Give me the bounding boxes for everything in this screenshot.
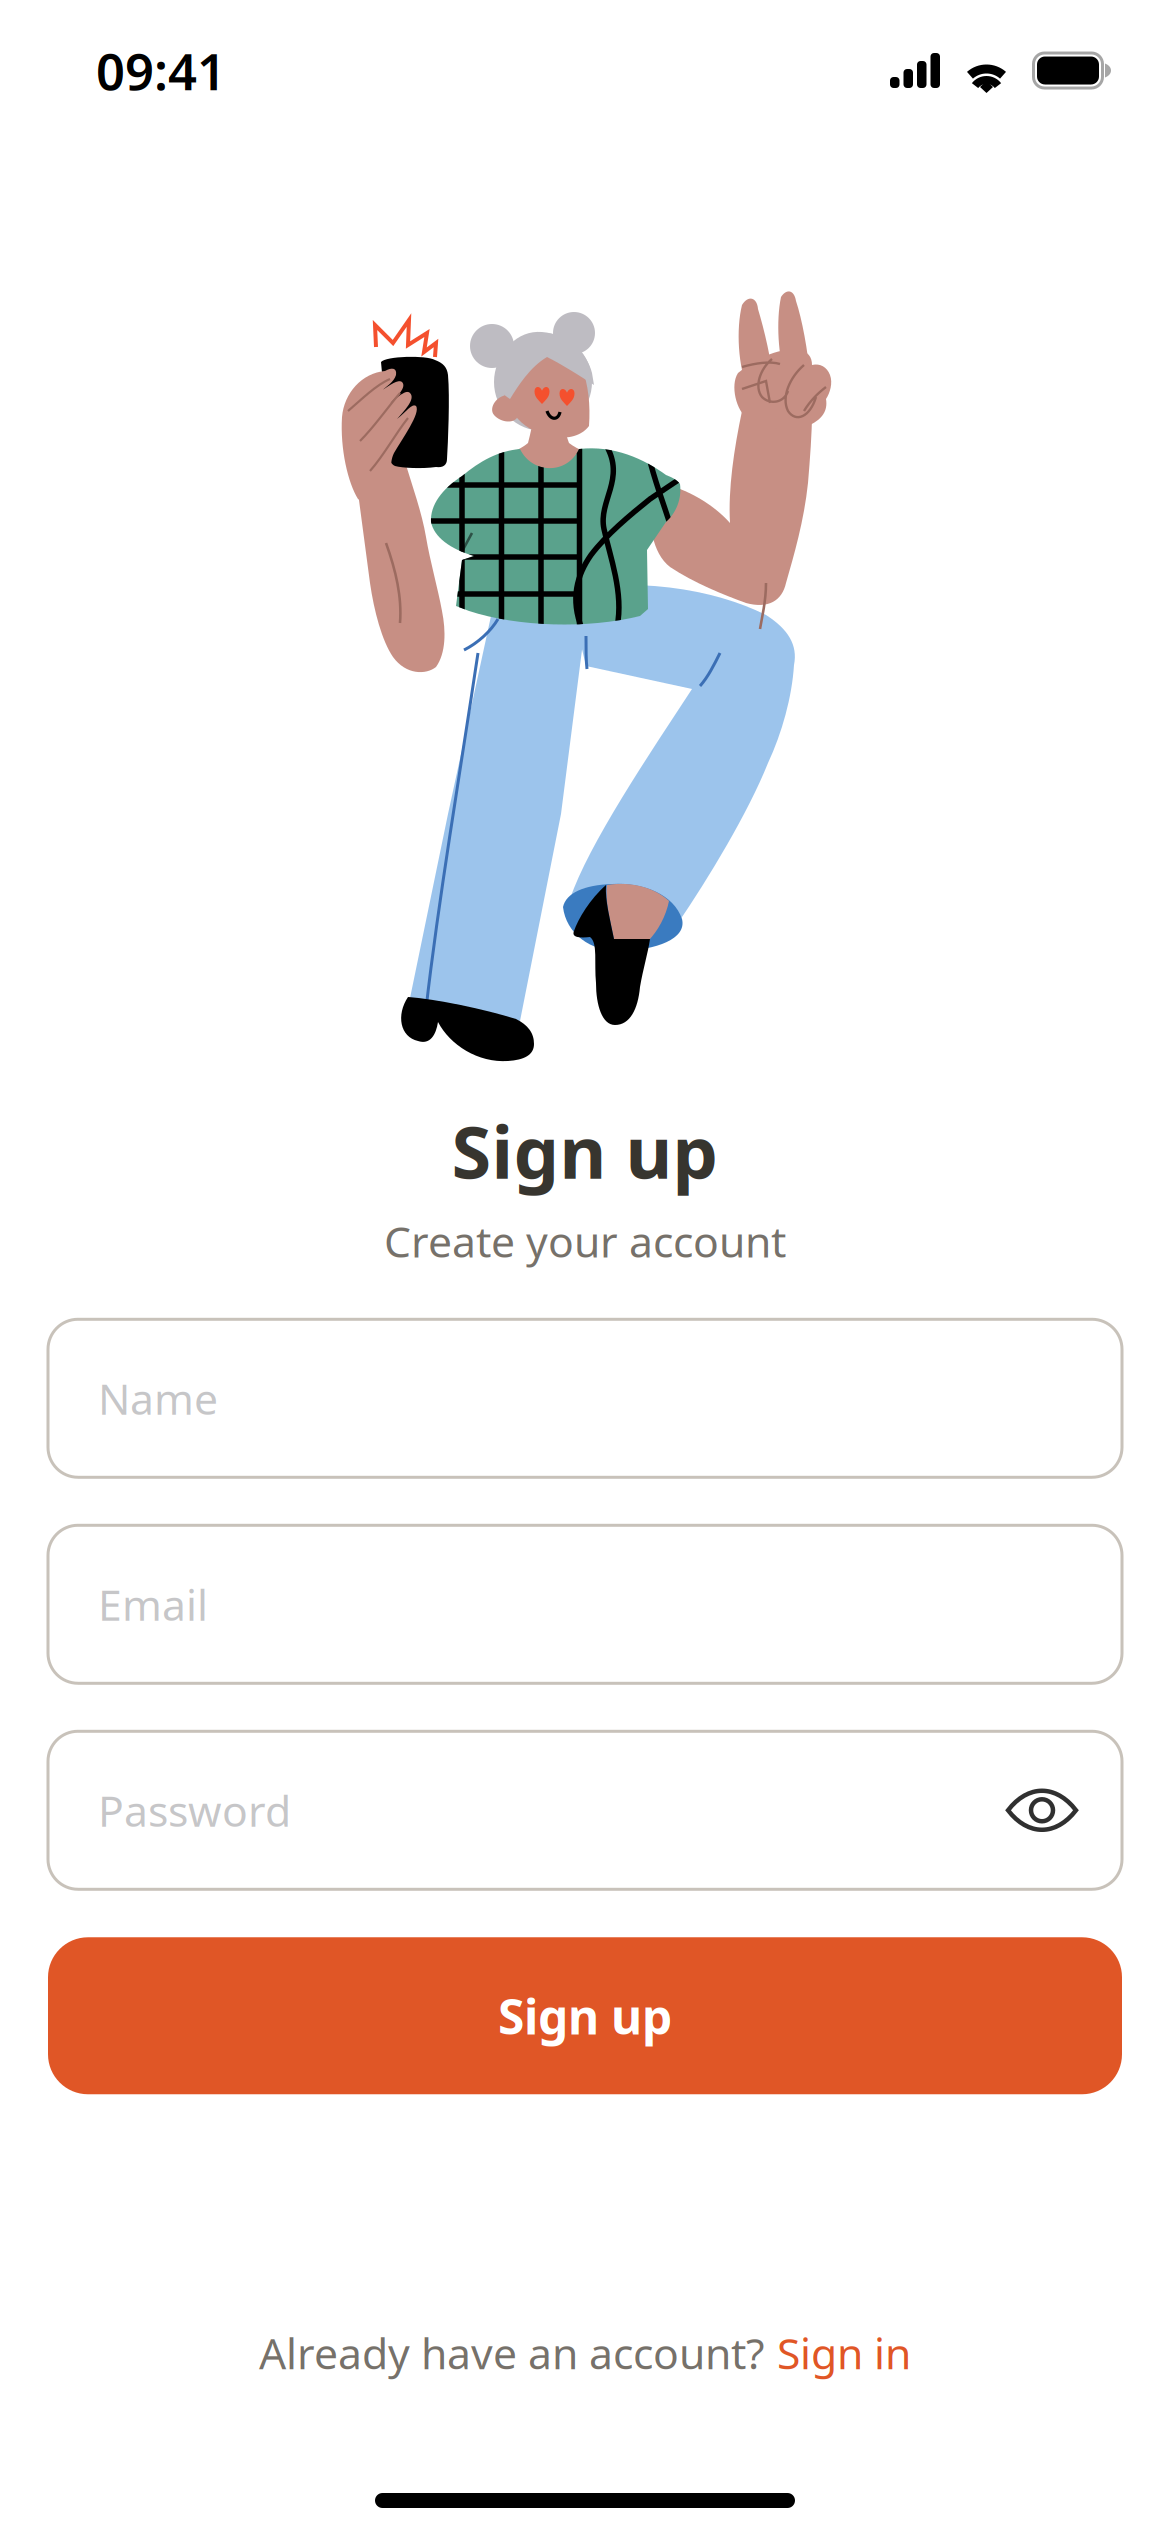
button[interactable]: Sign up xyxy=(48,1937,1122,2094)
staticText: Email xyxy=(98,1576,208,1633)
staticText: Sign up xyxy=(451,1103,718,1199)
staticText: Sign up xyxy=(498,1984,672,2048)
button[interactable]: Name xyxy=(48,1319,1122,1477)
staticText: Create your account xyxy=(384,1213,786,1269)
staticText: 09:41 xyxy=(96,37,226,104)
button[interactable]: Password xyxy=(48,1731,1122,1889)
staticText: Already have an account? xyxy=(259,2324,765,2381)
staticText: Name xyxy=(98,1370,218,1427)
staticText: Sign in xyxy=(777,2324,911,2381)
staticText: Password xyxy=(98,1782,291,1839)
button[interactable]: Email xyxy=(48,1525,1122,1683)
button[interactable]: Sign in xyxy=(777,2324,911,2381)
